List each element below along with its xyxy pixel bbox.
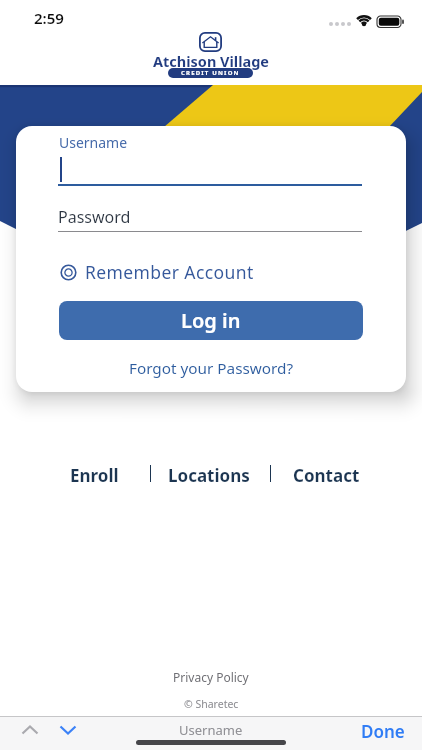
staticText: © Sharetec: [184, 697, 239, 711]
button[interactable]: Done: [361, 720, 405, 743]
staticText: Remember Account: [85, 260, 254, 284]
staticText: Atchison Village: [153, 51, 270, 71]
staticText: Log in: [181, 307, 241, 334]
staticText: Password: [58, 206, 131, 228]
staticText: Username: [179, 721, 243, 739]
button[interactable]: Enroll: [70, 464, 119, 487]
button[interactable]: Privacy Policy: [173, 669, 249, 685]
staticText: 2:59: [34, 8, 64, 28]
staticText: CREDIT UNION: [181, 69, 240, 77]
button[interactable]: [21, 724, 39, 736]
button[interactable]: [59, 724, 77, 736]
button[interactable]: Forgot your Password?: [129, 358, 294, 379]
button[interactable]: Locations: [168, 464, 250, 487]
button[interactable]: Remember Account: [60, 260, 254, 284]
staticText: Username: [59, 133, 128, 152]
button[interactable]: Log in: [59, 301, 363, 340]
button[interactable]: Contact: [293, 464, 360, 487]
